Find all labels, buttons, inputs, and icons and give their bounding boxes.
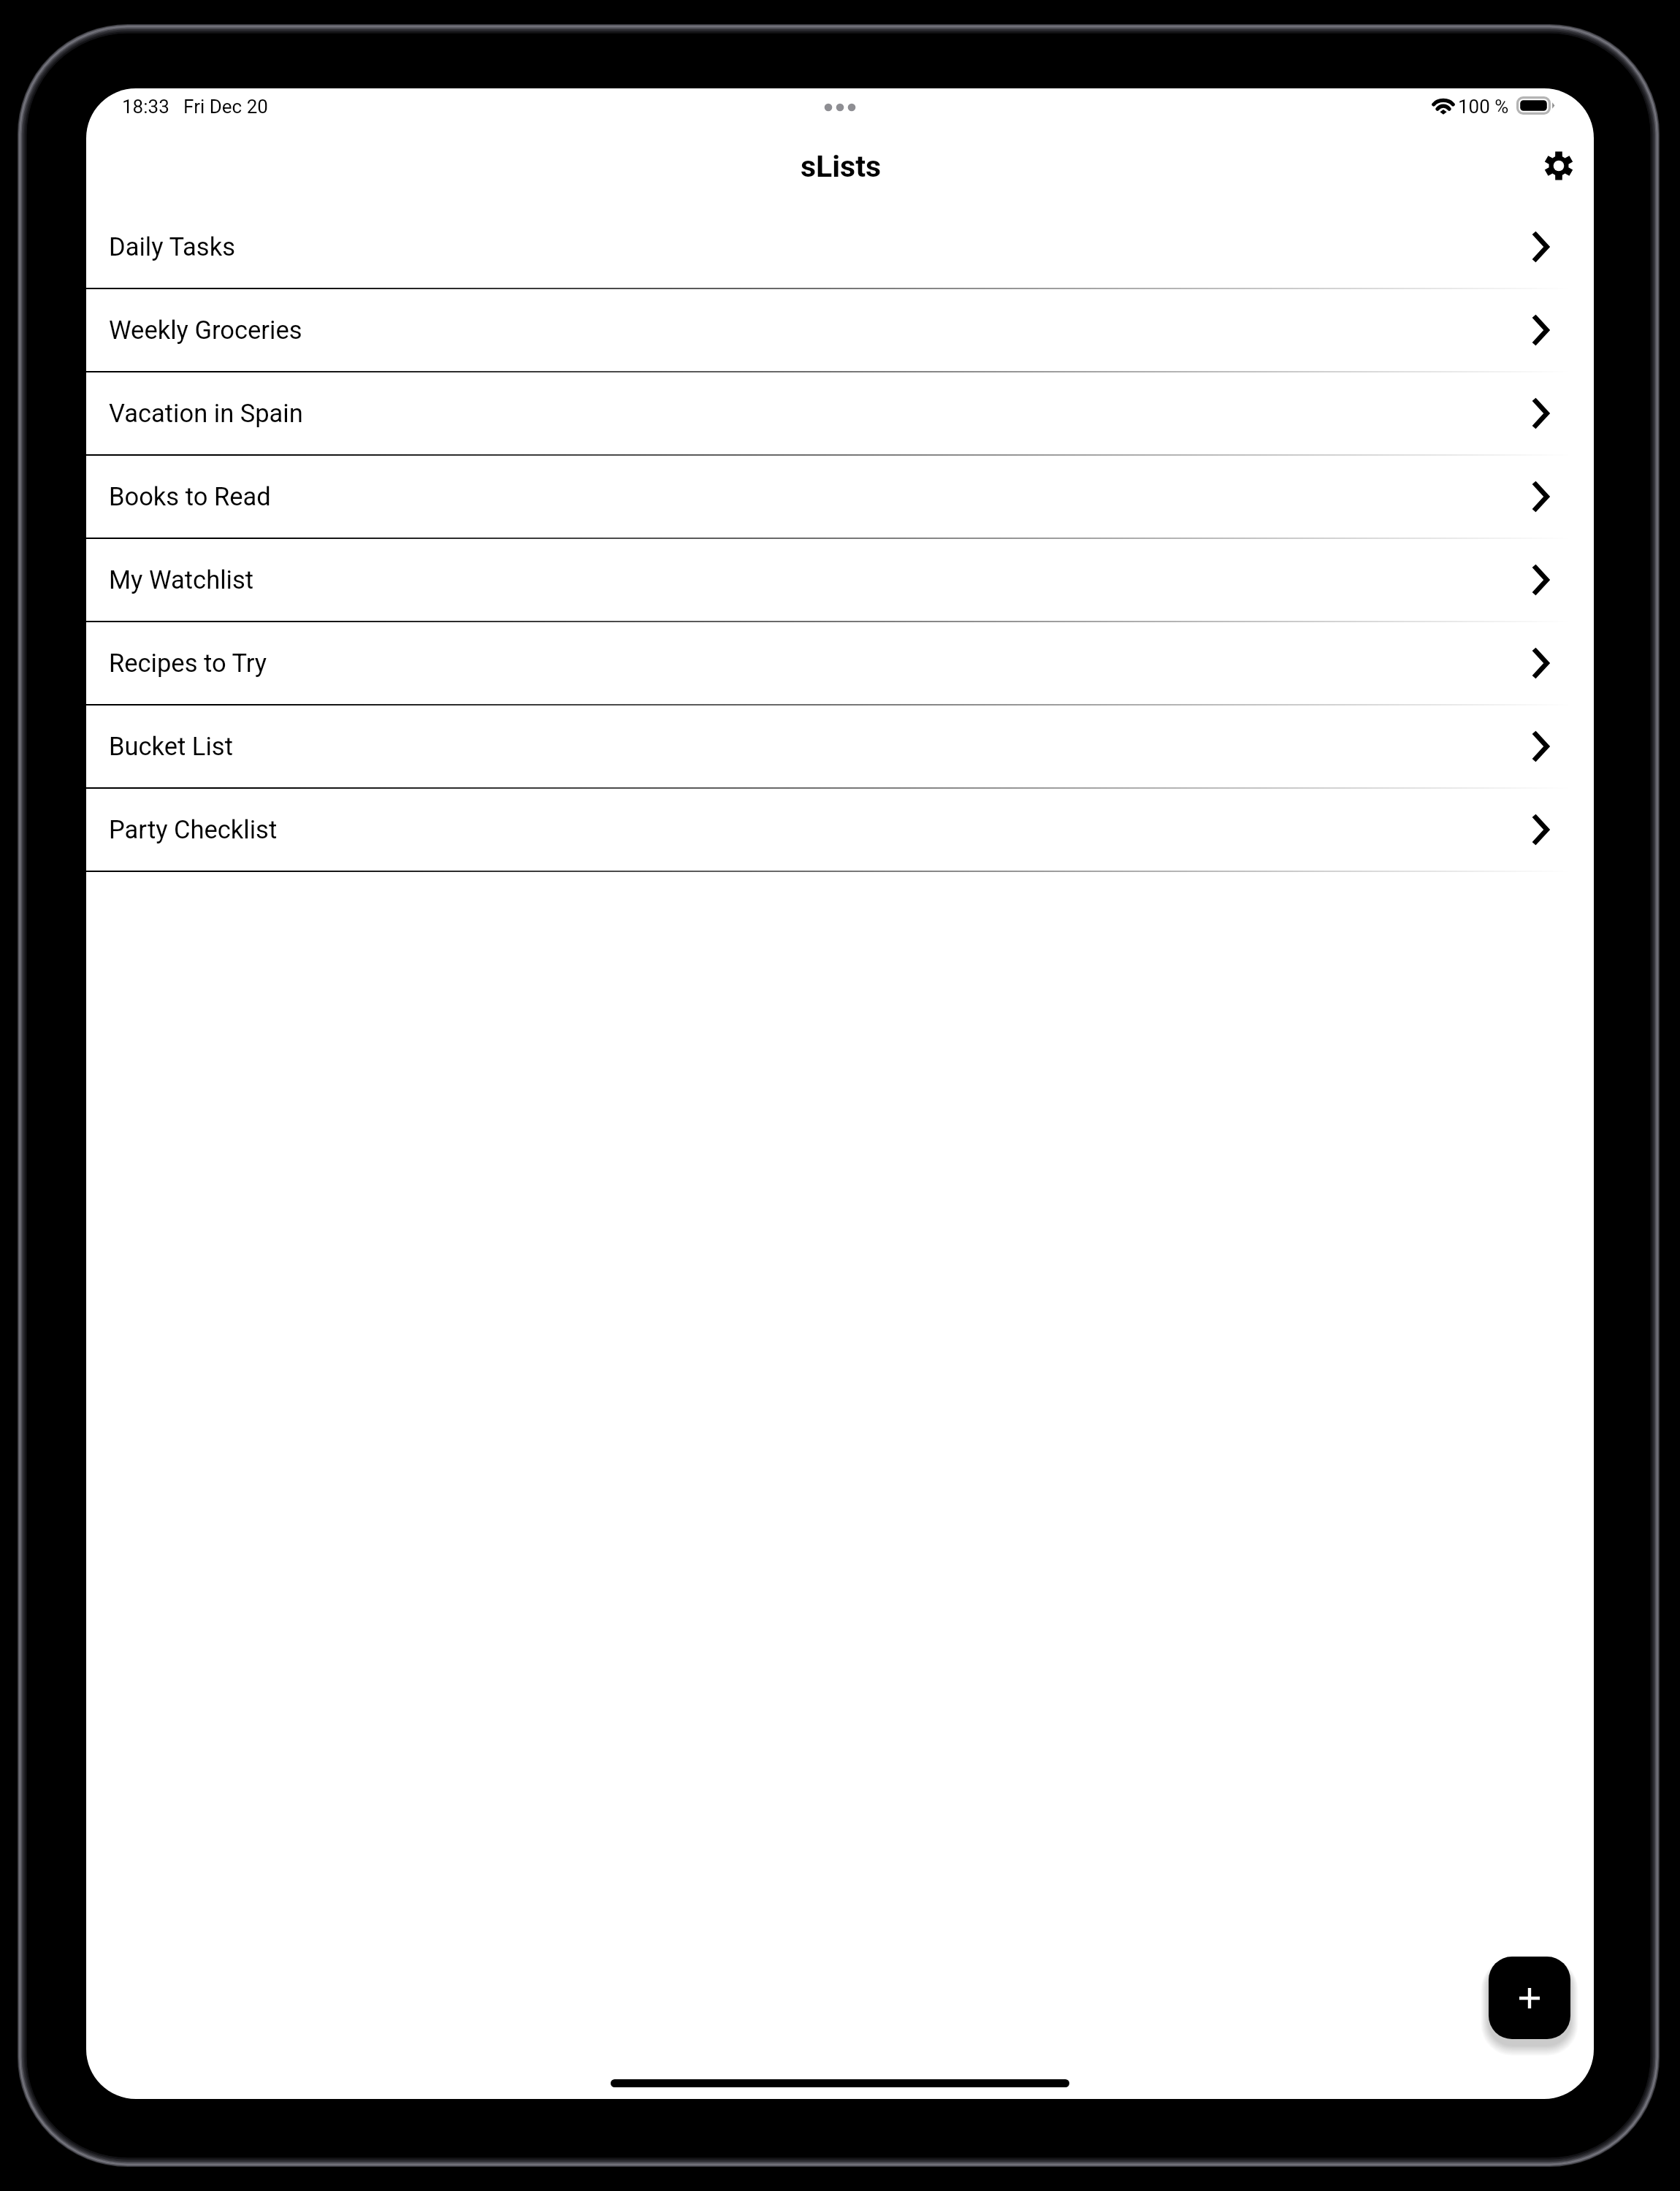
staticText: My Watchlist [109, 565, 254, 594]
button[interactable]: Bucket List [86, 706, 1594, 787]
button[interactable]: Add list [1489, 1957, 1570, 2039]
staticText: Daily Tasks [109, 232, 235, 261]
staticText: Bucket List [109, 732, 233, 761]
button[interactable]: Settings [1530, 137, 1588, 195]
staticText: Books to Read [109, 482, 271, 511]
staticText: sLists [801, 149, 882, 184]
staticText: 100 % [1458, 96, 1509, 118]
staticText: Party Checklist [109, 815, 278, 844]
button[interactable]: Party Checklist [86, 789, 1594, 871]
staticText: Vacation in Spain [109, 399, 303, 428]
button[interactable]: Daily Tasks [86, 206, 1594, 288]
staticText: 18:33 Fri Dec 20 [122, 96, 268, 118]
button[interactable]: Vacation in Spain [86, 372, 1594, 454]
button[interactable]: Recipes to Try [86, 622, 1594, 704]
button[interactable]: My Watchlist [86, 539, 1594, 621]
button[interactable]: Books to Read [86, 456, 1594, 538]
staticText: Recipes to Try [109, 649, 267, 678]
staticText: Weekly Groceries [109, 316, 302, 345]
button[interactable]: Weekly Groceries [86, 289, 1594, 371]
